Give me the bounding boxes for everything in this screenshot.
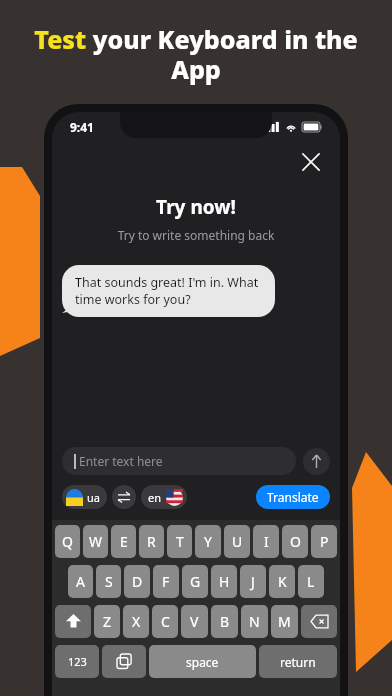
button[interactable]: N bbox=[241, 605, 268, 638]
button[interactable]: space bbox=[149, 645, 256, 678]
button[interactable]: Translate bbox=[256, 485, 330, 509]
button[interactable]: V bbox=[181, 605, 208, 638]
button[interactable]: ua bbox=[62, 485, 107, 509]
button[interactable]: K bbox=[269, 565, 295, 598]
button[interactable]: Q bbox=[55, 525, 80, 558]
staticText: 9:41 bbox=[70, 119, 94, 135]
button[interactable]: U bbox=[224, 525, 250, 558]
staticText: D bbox=[132, 572, 143, 591]
button[interactable]: Backspace bbox=[301, 605, 337, 638]
button[interactable]: Copy bbox=[102, 645, 146, 678]
staticText: K bbox=[278, 572, 287, 591]
staticText: Try to write something back bbox=[52, 227, 340, 243]
button[interactable]: O bbox=[282, 525, 308, 558]
staticText: That sounds great! I'm in. What time wor… bbox=[75, 274, 262, 308]
button[interactable]: return bbox=[259, 645, 337, 678]
staticText: J bbox=[251, 572, 255, 591]
staticText: X bbox=[132, 612, 141, 631]
staticText: Try now! bbox=[52, 194, 340, 220]
staticText: space bbox=[186, 654, 219, 670]
button[interactable]: F bbox=[153, 565, 179, 598]
staticText: I bbox=[264, 532, 269, 551]
button[interactable]: en bbox=[141, 485, 187, 509]
staticText: A bbox=[76, 572, 85, 591]
staticText: E bbox=[120, 532, 128, 551]
staticText: Enter text here bbox=[79, 453, 163, 469]
button[interactable]: Z bbox=[94, 605, 120, 638]
button[interactable]: J bbox=[240, 565, 266, 598]
button[interactable]: I bbox=[253, 525, 279, 558]
staticText: Q bbox=[62, 532, 73, 551]
staticText: S bbox=[105, 572, 113, 591]
button[interactable]: M bbox=[271, 605, 298, 638]
staticText: U bbox=[232, 532, 243, 551]
staticText: P bbox=[320, 532, 329, 551]
button[interactable]: G bbox=[182, 565, 208, 598]
staticText: Translate bbox=[267, 489, 319, 505]
staticText: 123 bbox=[68, 654, 87, 669]
staticText: G bbox=[190, 572, 201, 591]
button[interactable]: E bbox=[111, 525, 136, 558]
button[interactable]: A bbox=[68, 565, 93, 598]
button[interactable]: H bbox=[211, 565, 237, 598]
staticText: F bbox=[162, 572, 170, 591]
staticText: B bbox=[220, 612, 230, 631]
button[interactable]: T bbox=[167, 525, 192, 558]
staticText: M bbox=[278, 612, 291, 631]
staticText: V bbox=[190, 612, 199, 631]
button[interactable]: 123 bbox=[55, 645, 99, 678]
button[interactable]: P bbox=[311, 525, 337, 558]
staticText: T bbox=[176, 532, 184, 551]
staticText: N bbox=[249, 612, 260, 631]
button[interactable]: Shift bbox=[55, 605, 91, 638]
button[interactable]: S bbox=[96, 565, 121, 598]
staticText: Test your Keyboard in the App bbox=[28, 22, 364, 87]
button[interactable]: Enter text here bbox=[62, 447, 296, 475]
button[interactable]: X bbox=[123, 605, 149, 638]
button[interactable]: B bbox=[211, 605, 238, 638]
button[interactable]: D bbox=[124, 565, 150, 598]
staticText: O bbox=[290, 532, 301, 551]
staticText: H bbox=[219, 572, 230, 591]
staticText: return bbox=[280, 654, 316, 670]
button[interactable]: Send bbox=[303, 448, 330, 475]
staticText: W bbox=[89, 532, 103, 551]
staticText: R bbox=[147, 532, 156, 551]
staticText: ua bbox=[87, 490, 100, 505]
button[interactable]: R bbox=[139, 525, 164, 558]
staticText: Z bbox=[103, 612, 112, 631]
button[interactable]: Close bbox=[296, 147, 326, 177]
button[interactable]: L bbox=[298, 565, 324, 598]
button[interactable]: Swap languages bbox=[112, 485, 136, 509]
staticText: C bbox=[161, 612, 170, 631]
button[interactable]: W bbox=[83, 525, 108, 558]
staticText: L bbox=[307, 572, 315, 591]
button[interactable]: Y bbox=[195, 525, 221, 558]
staticText: en bbox=[148, 490, 162, 505]
staticText: Y bbox=[204, 532, 212, 551]
button[interactable]: C bbox=[152, 605, 178, 638]
